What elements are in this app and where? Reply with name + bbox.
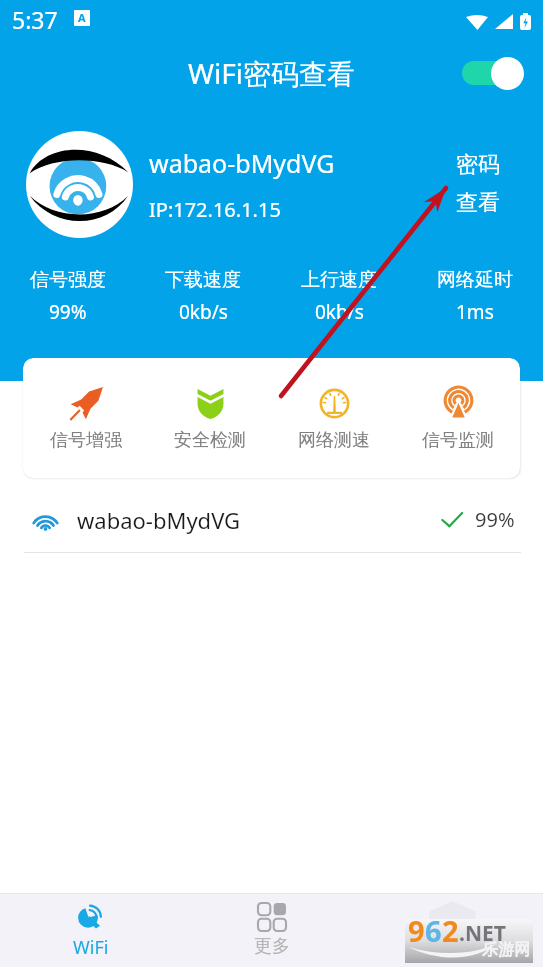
staticText: 99% [49,299,87,325]
staticText: wabao-bMydVG [149,146,335,180]
staticText: 2 [442,911,459,950]
staticText: 5:37 [12,4,58,35]
staticText: 信号监测 [422,429,494,452]
staticText: 下载速度 [165,268,241,292]
staticText: 密码 [456,151,500,179]
staticText: 99% [475,506,515,533]
button[interactable]: 更多 [181,894,362,967]
staticText: 1ms [456,299,494,325]
staticText: 0kb/s [315,299,364,325]
staticText: 网络测速 [298,429,370,452]
button[interactable]: WiFi [0,894,181,967]
staticText: 上行速度 [301,268,377,292]
staticText: 安全检测 [174,429,246,452]
staticText: 信号增强 [50,429,122,452]
staticText: IP:172.16.1.15 [149,196,281,223]
button[interactable]: 网络测速 [272,377,396,460]
staticText: A [78,10,86,25]
staticText: 6 [425,911,442,950]
staticText: 网络延时 [437,268,513,292]
staticText: wabao-bMydVG [77,505,441,535]
staticText: 乐游网 [482,940,530,960]
button[interactable]: wabao-bMydVG [0,487,543,552]
staticText: 查看 [456,189,500,217]
staticText: 0kb/s [179,299,228,325]
staticText: 更多 [254,935,290,958]
button[interactable]: 信号增强 [23,377,148,460]
button[interactable]: 信号监测 [396,377,520,460]
button[interactable]: 安全检测 [148,377,272,460]
button[interactable]: WiFi toggle [462,56,524,90]
button[interactable]: 密码 [456,151,500,217]
staticText: 信号强度 [30,268,106,292]
staticText: WiFi [73,935,109,960]
staticText: .NET [459,919,506,948]
staticText: WiFi密码查看 [188,54,356,92]
staticText: 9 [408,911,425,950]
